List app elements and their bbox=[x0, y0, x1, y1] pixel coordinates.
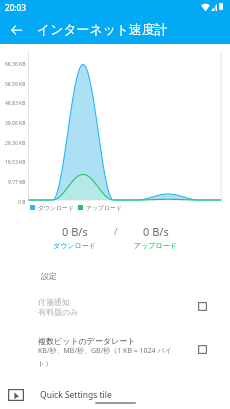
staticText: 0 B/s bbox=[62, 224, 88, 239]
staticText: 0 B bbox=[18, 199, 26, 206]
staticText: アップロード bbox=[86, 204, 123, 211]
staticText: ダウンロード bbox=[53, 241, 96, 250]
button[interactable]: 0 B/s bbox=[115, 224, 196, 250]
staticText: インターネット速度計 bbox=[37, 22, 168, 38]
button[interactable]: Toggle setting bbox=[193, 340, 211, 358]
button[interactable]: Back bbox=[4, 18, 28, 42]
staticText: 29.30 KB bbox=[5, 140, 26, 147]
staticText: 39.06 KB bbox=[5, 120, 26, 127]
staticText: 9.77 KB bbox=[8, 179, 26, 186]
button[interactable]: Quick Settings tile bbox=[0, 383, 230, 406]
staticText: / bbox=[114, 225, 118, 238]
staticText: 0 B/s bbox=[143, 224, 169, 239]
staticText: 58.59 KB bbox=[5, 81, 26, 88]
staticText: 有料版のみ bbox=[38, 307, 79, 317]
staticText: 複数ビットのデータレート bbox=[38, 336, 136, 346]
staticText: Quick Settings tile bbox=[40, 389, 112, 401]
button[interactable]: Toggle setting bbox=[193, 297, 211, 315]
button[interactable]: 複数ビットのデータレート bbox=[0, 331, 230, 367]
staticText: 19.53 KB bbox=[5, 159, 26, 166]
staticText: 48.83 KB bbox=[5, 100, 26, 107]
staticText: ダウンロード bbox=[38, 204, 75, 211]
button[interactable]: 付箋通知 bbox=[0, 293, 230, 320]
staticText: 付箋通知 bbox=[38, 297, 70, 307]
button[interactable]: 0 B/s bbox=[34, 224, 115, 250]
staticText: KB/秒、MB/秒、GB/秒（1 KB = 1024 バイト） bbox=[38, 346, 185, 367]
staticText: アップロード bbox=[134, 241, 177, 250]
staticText: 68.36 KB bbox=[5, 61, 26, 68]
staticText: 設定 bbox=[41, 271, 57, 281]
staticText: 20:03 bbox=[5, 2, 26, 13]
